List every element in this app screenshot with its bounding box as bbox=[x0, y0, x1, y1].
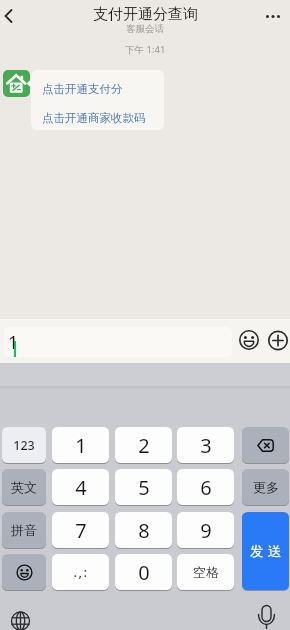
button[interactable]: 5 bbox=[115, 469, 172, 505]
button[interactable] bbox=[254, 602, 280, 630]
staticText: 8 bbox=[138, 517, 150, 544]
button[interactable] bbox=[3, 70, 30, 97]
staticText: 1 bbox=[75, 432, 87, 459]
button[interactable]: 2 bbox=[115, 427, 172, 463]
button[interactable] bbox=[267, 329, 289, 351]
staticText: 支付开通分查询 bbox=[93, 5, 198, 24]
button[interactable]: 4 bbox=[52, 469, 109, 505]
button[interactable]: 0 bbox=[115, 554, 172, 590]
staticText: .,: bbox=[73, 563, 89, 581]
button[interactable]: 7 bbox=[52, 512, 109, 548]
staticText: 123 bbox=[13, 437, 35, 454]
button[interactable] bbox=[2, 554, 46, 590]
button[interactable]: 点击开通支付分 bbox=[42, 80, 157, 98]
staticText: 0 bbox=[138, 559, 150, 586]
staticText: 9 bbox=[200, 517, 212, 544]
button[interactable]: 英文 bbox=[2, 469, 46, 505]
staticText: 客服会话 bbox=[126, 23, 164, 35]
button[interactable]: 3 bbox=[177, 427, 234, 463]
button[interactable]: 1 bbox=[52, 427, 109, 463]
staticText: 空格 bbox=[193, 564, 219, 580]
button[interactable]: 空格 bbox=[177, 554, 234, 590]
button[interactable] bbox=[242, 427, 289, 463]
button[interactable] bbox=[0, 2, 30, 32]
button[interactable]: 9 bbox=[177, 512, 234, 548]
button[interactable]: .,: bbox=[52, 554, 109, 590]
button[interactable]: 拼音 bbox=[2, 512, 46, 548]
button[interactable]: 点击开通商家收款码 bbox=[42, 109, 160, 127]
staticText: 1 bbox=[8, 330, 19, 355]
staticText: 发送 bbox=[248, 543, 283, 560]
button[interactable] bbox=[8, 608, 33, 630]
button[interactable]: 更多 bbox=[242, 469, 289, 505]
button[interactable]: 1 bbox=[4, 327, 232, 357]
staticText: 拼音 bbox=[11, 522, 37, 538]
staticText: 更多 bbox=[253, 479, 279, 495]
staticText: 点击开通商家收款码 bbox=[42, 111, 146, 125]
staticText: 3 bbox=[200, 432, 212, 459]
staticText: 2 bbox=[138, 432, 150, 459]
button[interactable] bbox=[260, 6, 286, 28]
staticText: 4 bbox=[75, 474, 87, 501]
button[interactable] bbox=[238, 329, 260, 351]
button[interactable]: 发送 bbox=[242, 512, 289, 590]
button[interactable]: 8 bbox=[115, 512, 172, 548]
staticText: 7 bbox=[75, 517, 87, 544]
staticText: 6 bbox=[200, 474, 212, 501]
button[interactable] bbox=[31, 70, 164, 130]
staticText: 英文 bbox=[11, 479, 37, 495]
staticText: 点击开通支付分 bbox=[42, 82, 123, 96]
button[interactable]: 123 bbox=[2, 427, 46, 463]
button[interactable]: 6 bbox=[177, 469, 234, 505]
staticText: 下午 1:41 bbox=[125, 43, 166, 56]
staticText: 5 bbox=[138, 474, 150, 501]
